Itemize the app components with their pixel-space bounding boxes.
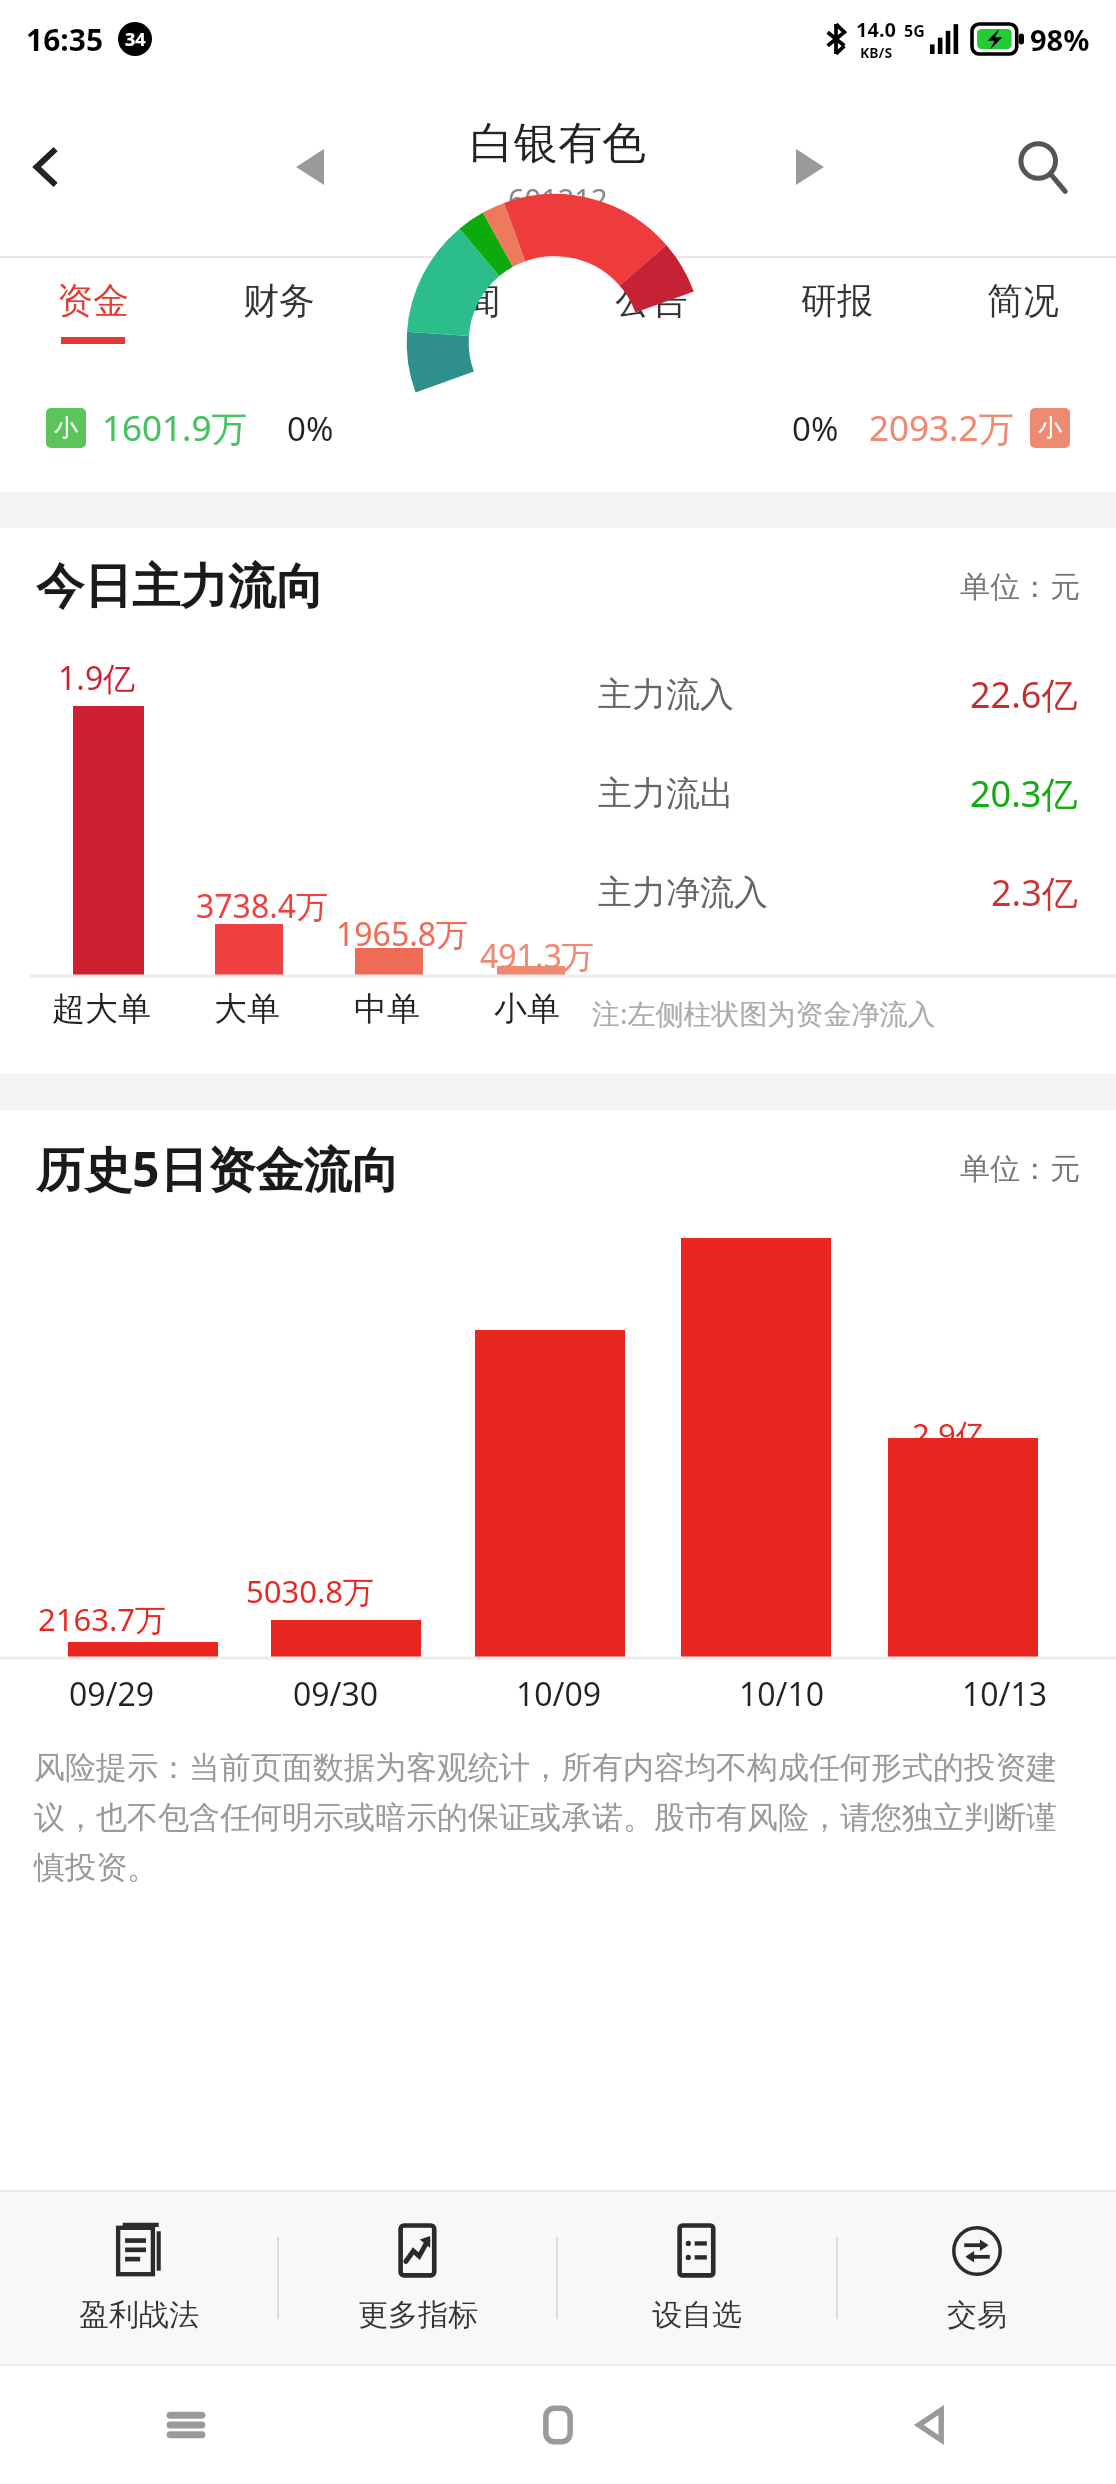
staticText: 设自选 [652,2296,742,2334]
staticText: 10/10 [739,1672,825,1716]
staticText: 5G [904,20,925,42]
staticText: 公告 [615,278,687,323]
staticText: 4.3亿 [500,1323,575,1365]
staticText: 超大单 [52,988,151,1030]
staticText: 1.9亿 [58,656,136,700]
staticText: 1601.9万 [102,404,247,452]
button[interactable]: 财务 [186,258,372,364]
staticText: 小 [54,413,78,443]
button[interactable]: 设自选 [558,2192,836,2364]
staticText: 2093.2万 [869,404,1014,452]
staticText: 5030.8万 [246,1570,374,1612]
button[interactable]: 交易 [838,2192,1116,2364]
button[interactable]: Previous stock [272,129,348,205]
button[interactable]: Search [996,121,1088,213]
staticText: 今日主力流向 [36,557,324,617]
staticText: 注:左侧柱状图为资金净流入 [592,994,936,1032]
button[interactable]: 新闻 [372,258,558,364]
staticText: 资金 [57,278,129,323]
staticText: 财务 [243,278,315,323]
staticText: 历史5日资金流向 [36,1136,400,1202]
staticText: 16:35 [26,19,104,60]
staticText: 大单 [214,988,280,1030]
staticText: 白银有色 [470,116,646,171]
staticText: 1965.8万 [336,912,469,956]
staticText: 小 [1038,413,1062,443]
staticText: KB/S [860,43,893,62]
staticText: 中单 [354,988,420,1030]
staticText: 09/29 [69,1672,155,1716]
staticText: 主力流出 [598,772,734,815]
button[interactable]: Recent apps [0,2366,372,2484]
button[interactable]: Home [372,2366,744,2484]
staticText: 0% [287,406,334,451]
staticText: 0% [792,406,839,451]
staticText: 2.3亿 [991,868,1078,917]
staticText: 10/09 [516,1672,602,1716]
staticText: 风险提示：当前页面数据为客观统计，所有内容均不构成任何形式的投资建议，也不包含任… [34,1748,1082,1888]
button[interactable]: Back [744,2366,1116,2484]
staticText: 09/30 [293,1672,379,1716]
staticText: 22.6亿 [970,670,1078,719]
staticText: 盈利战法 [79,2296,199,2334]
staticText: 单位：元 [960,1150,1080,1188]
staticText: 14.0 [856,16,896,43]
staticText: 2.9亿 [912,1413,987,1455]
staticText: 601212 [508,179,608,218]
staticText: 3738.4万 [196,884,329,928]
staticText: 20.3亿 [970,769,1078,818]
staticText: 小单 [494,988,560,1030]
button[interactable]: 更多指标 [279,2192,556,2364]
staticText: 98% [1030,20,1090,59]
staticText: 更多指标 [358,2296,478,2334]
staticText: 单位：元 [960,568,1080,606]
staticText: 主力净流入 [598,871,768,914]
button[interactable]: 盈利战法 [0,2192,277,2364]
staticText: 简况 [987,278,1059,323]
staticText: 34 [125,27,146,52]
staticText: 2163.7万 [38,1598,166,1640]
staticText: 交易 [947,2296,1007,2334]
button[interactable]: 研报 [744,258,930,364]
staticText: 5.5亿 [706,1235,781,1277]
button[interactable]: 资金 [0,258,186,364]
button[interactable]: 公告 [558,258,744,364]
staticText: 10/13 [962,1672,1048,1716]
button[interactable]: Back [8,127,88,207]
button[interactable]: 简况 [930,258,1116,364]
staticText: 491.3万 [480,934,594,978]
staticText: 主力流入 [598,673,734,716]
button[interactable]: Next stock [772,129,848,205]
staticText: 研报 [801,278,873,323]
staticText: 新闻 [429,278,501,323]
